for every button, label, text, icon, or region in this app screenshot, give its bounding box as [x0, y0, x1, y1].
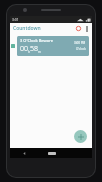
- staticText: m: [38, 50, 41, 54]
- staticText: 00: [20, 44, 28, 54]
- button[interactable]: Home: [38, 148, 65, 158]
- button[interactable]: 3 O'Clock Beware: [17, 36, 89, 56]
- staticText: 3:01: [12, 17, 19, 22]
- button[interactable]: Add countdown: [74, 130, 87, 143]
- staticText: Countdown: [13, 25, 41, 32]
- staticText: 3 O'Clock Beware: [20, 38, 53, 43]
- button[interactable]: Back: [10, 148, 38, 158]
- button[interactable]: Alarms: [74, 24, 83, 33]
- staticText: 58: [30, 44, 38, 54]
- staticText: h: [28, 50, 30, 54]
- staticText: 3:00 PM: [74, 41, 86, 45]
- staticText: O'clock: [76, 47, 86, 51]
- button[interactable]: More options: [83, 25, 91, 33]
